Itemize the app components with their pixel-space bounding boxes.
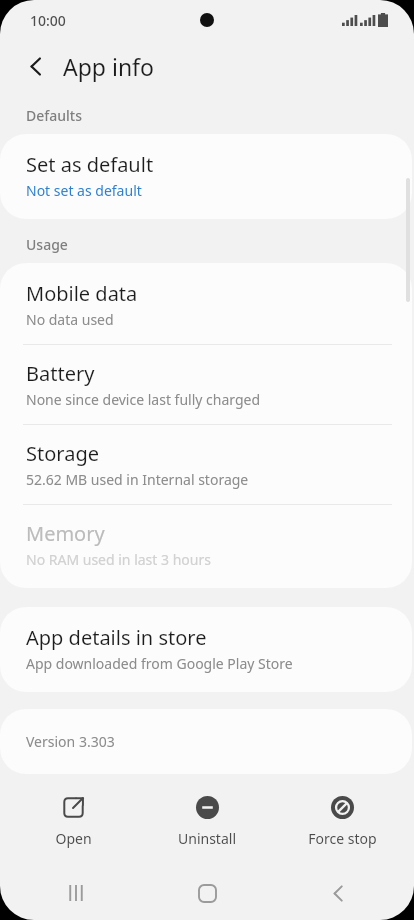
staticText: Set as default	[26, 151, 154, 178]
staticText: Open	[55, 829, 92, 848]
staticText: Battery	[26, 360, 95, 387]
staticText: Uninstall	[178, 829, 236, 848]
button[interactable]: Home	[152, 866, 262, 920]
staticText: App info	[63, 51, 154, 82]
button[interactable]: Uninstall	[145, 790, 269, 854]
staticText: 52.62 MB used in Internal storage	[26, 470, 249, 489]
staticText: Storage	[26, 440, 99, 467]
button[interactable]: Set as default	[0, 134, 412, 219]
button[interactable]: App details in store	[0, 607, 412, 692]
button[interactable]: Force stop	[280, 790, 404, 854]
staticText: 10:00	[30, 11, 66, 30]
button[interactable]: Mobile data	[0, 263, 412, 344]
staticText: Not set as default	[26, 181, 142, 200]
staticText: App downloaded from Google Play Store	[26, 654, 293, 673]
staticText: App details in store	[26, 624, 207, 651]
staticText: Defaults	[26, 106, 82, 125]
staticText: No RAM used in last 3 hours	[26, 550, 211, 569]
button[interactable]: Back	[14, 44, 58, 88]
staticText: Memory	[26, 520, 105, 547]
staticText: No data used	[26, 310, 114, 329]
staticText: Usage	[26, 235, 68, 254]
button[interactable]: Back	[283, 866, 393, 920]
button[interactable]: Battery	[0, 345, 412, 424]
staticText: Mobile data	[26, 280, 138, 307]
staticText: None since device last fully charged	[26, 390, 261, 409]
button[interactable]: Recent apps	[21, 866, 131, 920]
staticText: Version 3.303	[26, 732, 115, 751]
staticText: Force stop	[308, 829, 377, 848]
button[interactable]: Open	[11, 790, 135, 854]
button[interactable]: Memory	[0, 505, 412, 588]
button[interactable]: Storage	[0, 425, 412, 504]
